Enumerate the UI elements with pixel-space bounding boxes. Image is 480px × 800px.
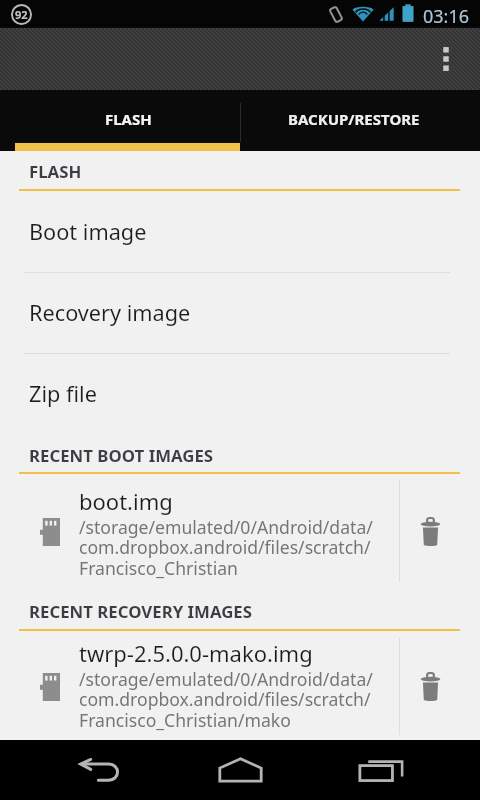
staticText: Zip file bbox=[29, 379, 97, 409]
button[interactable]: Recovery image bbox=[0, 280, 480, 361]
button[interactable]: Home bbox=[200, 740, 280, 800]
staticText: 92 bbox=[15, 7, 28, 22]
staticText: BACKUP/RESTORE bbox=[288, 109, 420, 129]
staticText: /storage/emulated/0/Android/data/ com.dr… bbox=[79, 515, 373, 581]
staticText: RECENT RECOVERY IMAGES bbox=[29, 600, 253, 623]
staticText: RECENT BOOT IMAGES bbox=[29, 444, 214, 467]
button[interactable]: Delete bbox=[400, 480, 480, 582]
staticText: FLASH bbox=[29, 160, 82, 183]
button[interactable]: boot.img bbox=[0, 480, 399, 582]
button[interactable]: Boot image bbox=[0, 199, 480, 280]
button[interactable]: FLASH bbox=[0, 90, 240, 151]
button[interactable]: twrp-2.5.0.0-mako.img bbox=[0, 638, 399, 735]
staticText: boot.img bbox=[79, 486, 173, 516]
staticText: /storage/emulated/0/Android/data/ com.dr… bbox=[79, 667, 373, 733]
button[interactable]: Delete bbox=[400, 638, 480, 735]
staticText: twrp-2.5.0.0-mako.img bbox=[79, 638, 313, 668]
staticText: Boot image bbox=[29, 217, 147, 247]
button[interactable]: BACKUP/RESTORE bbox=[241, 90, 480, 151]
staticText: 03:16 bbox=[423, 4, 470, 29]
staticText: Recovery image bbox=[29, 298, 191, 328]
staticText: FLASH bbox=[105, 109, 152, 129]
button[interactable]: Zip file bbox=[0, 361, 480, 442]
button[interactable]: Recent apps bbox=[341, 740, 421, 800]
button[interactable]: More options bbox=[424, 28, 468, 90]
button[interactable]: Back bbox=[60, 740, 140, 800]
